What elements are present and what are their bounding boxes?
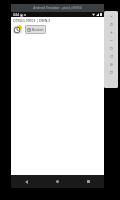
staticText: Button — [32, 27, 44, 32]
button[interactable]: Close — [108, 13, 114, 19]
button[interactable]: App icon — [13, 25, 22, 34]
button[interactable]: Power — [108, 21, 114, 27]
button[interactable]: Back — [11, 175, 42, 188]
button[interactable]: Button — [25, 25, 46, 34]
button[interactable]: Recent apps — [73, 175, 104, 188]
staticText: QTBUG-99503 | DMN-3 — [13, 18, 51, 23]
button[interactable]: Rotate left — [108, 45, 114, 51]
button[interactable]: More — [108, 69, 114, 75]
button[interactable]: Home — [42, 175, 73, 188]
button[interactable]: Volume up — [108, 29, 114, 35]
button[interactable]: Rotate right — [108, 53, 114, 59]
button[interactable]: Screenshot — [108, 61, 114, 67]
staticText: Android Emulator - pixel_xl:5554 — [33, 6, 82, 10]
staticText: 4:34 — [13, 13, 19, 17]
button[interactable]: Volume down — [108, 37, 114, 43]
